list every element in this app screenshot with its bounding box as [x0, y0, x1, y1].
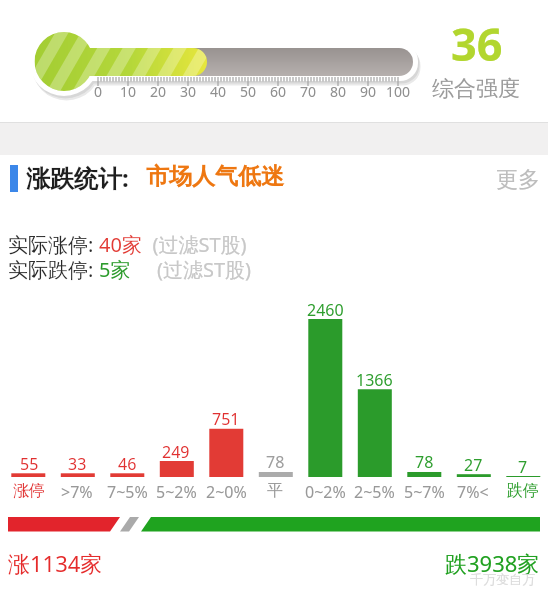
staticText: 综合强度	[432, 75, 520, 103]
staticText: 涨停	[13, 481, 45, 501]
staticText: 跌停	[507, 481, 539, 501]
staticText: 2460	[307, 299, 344, 321]
staticText: (过滤ST股)	[131, 256, 252, 283]
staticText: 实际涨停:	[8, 231, 99, 258]
staticText: 70	[300, 82, 317, 101]
staticText: 2~5%	[354, 481, 395, 503]
staticText: 78	[266, 451, 285, 473]
staticText: 90	[360, 82, 377, 101]
staticText: 涨跌统计:	[26, 161, 129, 194]
staticText: 5家	[99, 256, 131, 283]
staticText: 市场人气低迷	[146, 162, 284, 191]
staticText: (过滤ST股)	[142, 231, 247, 258]
staticText: 80	[330, 82, 347, 101]
staticText: 40家	[99, 231, 142, 258]
staticText: 0	[94, 82, 103, 101]
staticText: >7%	[61, 481, 93, 503]
staticText: 10	[120, 82, 137, 101]
staticText: 33	[68, 453, 87, 475]
staticText: 2~0%	[206, 481, 247, 503]
staticText: 78	[415, 451, 434, 473]
staticText: 实际跌停:	[8, 256, 99, 283]
staticText: 1366	[356, 369, 393, 391]
staticText: 5~7%	[404, 481, 445, 503]
staticText: 20	[150, 82, 167, 101]
staticText: 30	[180, 82, 197, 101]
staticText: 0~2%	[305, 481, 346, 503]
staticText: 5~2%	[156, 481, 197, 503]
staticText: 50	[240, 82, 257, 101]
staticText: 涨1134家	[8, 548, 103, 578]
staticText: 249	[162, 441, 190, 463]
staticText: 100	[386, 82, 411, 101]
staticText: 跌3938家	[445, 548, 540, 578]
button[interactable]: 更多	[470, 166, 540, 194]
staticText: 27	[464, 454, 483, 476]
staticText: 更多	[496, 166, 540, 194]
staticText: 平	[267, 481, 283, 501]
staticText: 千万变自万	[470, 571, 535, 587]
staticText: 55	[20, 453, 39, 475]
staticText: 36	[451, 13, 503, 74]
staticText: 7~5%	[107, 481, 148, 503]
staticText: 40	[210, 82, 227, 101]
staticText: 46	[118, 453, 137, 475]
staticText: 7	[518, 456, 528, 478]
staticText: 751	[212, 408, 240, 430]
staticText: 60	[270, 82, 287, 101]
staticText: 7%<	[457, 481, 489, 503]
